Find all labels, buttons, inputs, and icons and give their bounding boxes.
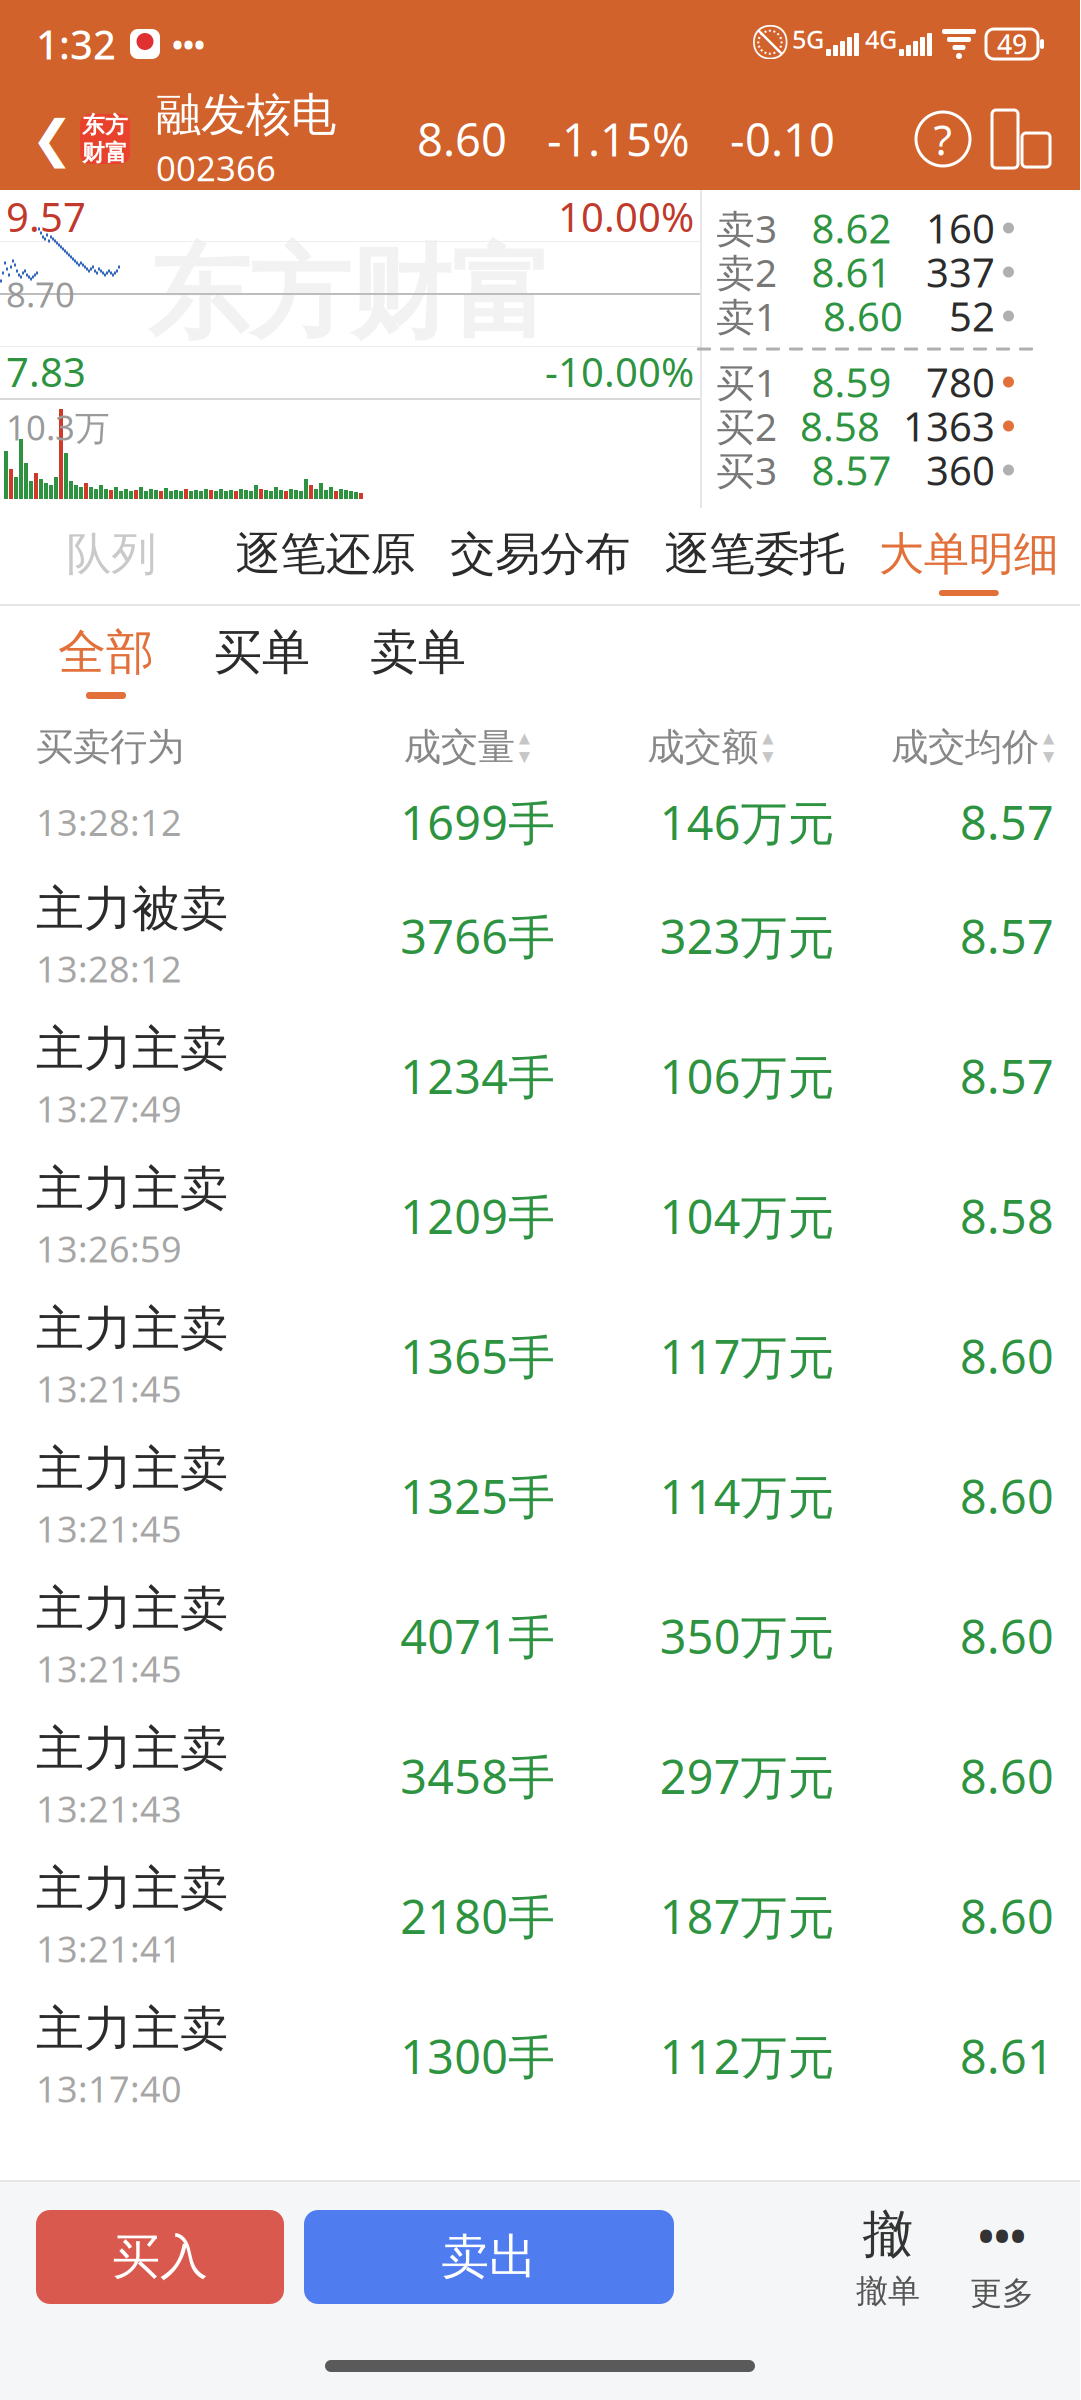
button[interactable]: ••• — [954, 2199, 1050, 2315]
button[interactable]: 卖出 — [304, 2210, 674, 2304]
button[interactable]: 逐笔委托 — [647, 508, 862, 604]
staticText: 350万元 — [660, 1605, 835, 1667]
button[interactable]: 东方财富 — [80, 114, 130, 164]
staticText: 1:32 — [36, 17, 116, 70]
staticText: 买3 — [716, 444, 777, 496]
staticText: 10.3万 — [6, 404, 110, 450]
staticText: 8.57 — [960, 791, 1054, 853]
staticText: 160 — [926, 201, 995, 254]
staticText: ⃠ — [756, 27, 784, 61]
staticText: 主力主卖 — [36, 1160, 228, 1219]
staticText: 337 — [926, 245, 995, 298]
staticText: ? — [933, 111, 952, 167]
staticText: 3458手 — [400, 1745, 555, 1807]
staticText: 13:21:45 — [36, 1645, 182, 1692]
staticText: 1365手 — [400, 1325, 555, 1387]
button[interactable]: 成交均价 — [891, 724, 1054, 770]
button[interactable]: 主力主卖 — [0, 1566, 1080, 1706]
staticText: 买卖行为 — [36, 724, 184, 770]
button[interactable]: 主力被卖 — [0, 866, 1080, 1006]
staticText: 13:28:12 — [36, 798, 182, 846]
button[interactable]: 成交量 — [404, 724, 530, 770]
button[interactable]: 全部 — [28, 608, 184, 714]
button[interactable]: 横屏 — [986, 104, 1056, 174]
button[interactable]: 撤 — [840, 2202, 936, 2312]
staticText: 买1 — [716, 356, 777, 408]
staticText: 8.57 — [960, 905, 1054, 967]
staticText: ▲ — [1043, 729, 1054, 746]
staticText: 1699手 — [400, 791, 555, 853]
button[interactable]: 买入 — [36, 2210, 284, 2304]
staticText: 106万元 — [660, 1045, 835, 1107]
button[interactable]: 返回 — [24, 99, 80, 179]
staticText: 主力主卖 — [36, 1860, 228, 1919]
staticText: 9.57 — [6, 190, 86, 243]
staticText: ••• — [172, 24, 205, 63]
button[interactable]: 卖单 — [340, 608, 496, 714]
staticText: 1234手 — [400, 1045, 555, 1107]
staticText: 8.61 — [960, 2025, 1054, 2087]
staticText: ••• — [978, 2207, 1026, 2264]
staticText: 撤单 — [856, 2271, 920, 2311]
staticText: 8.70 — [6, 271, 75, 317]
staticText: -10.00% — [545, 345, 694, 398]
button[interactable]: 大单明细 — [862, 508, 1076, 604]
staticText: 323万元 — [660, 905, 835, 967]
staticText: 大单明细 — [879, 526, 1059, 582]
staticText: -0.10 — [730, 109, 835, 169]
staticText: ❮ — [31, 110, 73, 168]
staticText: 780 — [926, 355, 995, 408]
staticText: 10.00% — [558, 190, 694, 243]
staticText: 8.60 — [960, 1325, 1054, 1387]
button[interactable]: 交易分布 — [433, 508, 647, 604]
staticText: 8.60 — [960, 1605, 1054, 1667]
staticText: 东方 — [82, 111, 128, 139]
staticText: 112万元 — [660, 2025, 835, 2087]
staticText: 成交量 — [404, 724, 515, 770]
staticText: 8.60 — [823, 289, 903, 342]
staticText: 13:21:41 — [36, 1925, 182, 1972]
button[interactable]: 买单 — [184, 608, 340, 714]
staticText: 297万元 — [660, 1745, 835, 1807]
staticText: 117万元 — [660, 1325, 835, 1387]
staticText: 13:27:49 — [36, 1085, 182, 1132]
staticText: 融发核电 — [156, 87, 336, 143]
staticText: 主力主卖 — [36, 1580, 228, 1639]
staticText: 主力主卖 — [36, 2000, 228, 2059]
staticText: 13:28:12 — [36, 945, 182, 992]
button[interactable]: 队列 — [4, 508, 218, 604]
staticText: -1.15% — [547, 109, 690, 169]
staticText: 8.60 — [417, 109, 507, 169]
staticText: ▼ — [762, 748, 773, 765]
staticText: 卖单 — [370, 623, 466, 682]
staticText: 更多 — [970, 2274, 1034, 2313]
staticText: 1325手 — [400, 1465, 555, 1527]
staticText: 东方财富 — [148, 232, 552, 356]
staticText: 4071手 — [400, 1605, 555, 1667]
staticText: 2180手 — [400, 1885, 555, 1947]
staticText: 主力主卖 — [36, 1020, 228, 1079]
staticText: 8.58 — [800, 399, 880, 452]
staticText: 卖1 — [716, 290, 777, 342]
button[interactable]: 主力主卖 — [0, 1146, 1080, 1286]
button[interactable]: 主力主卖 — [0, 1426, 1080, 1566]
button[interactable]: 主力主卖 — [0, 1986, 1080, 2126]
button[interactable]: 主力主卖 — [0, 1006, 1080, 1146]
staticText: ▼ — [1043, 748, 1054, 765]
staticText: 002366 — [156, 145, 276, 191]
staticText: 114万元 — [660, 1465, 835, 1527]
staticText: 8.60 — [960, 1885, 1054, 1947]
staticText: 7.83 — [6, 345, 86, 398]
staticText: 4G — [865, 22, 897, 56]
button[interactable]: 逐笔还原 — [218, 508, 433, 604]
staticText: 8.62 — [811, 201, 891, 254]
button[interactable]: 主力主卖 — [0, 1286, 1080, 1426]
button[interactable]: 帮助 — [916, 112, 970, 166]
staticText: 买单 — [214, 623, 310, 682]
button[interactable]: 成交额 — [647, 724, 773, 770]
staticText: 队列 — [66, 526, 156, 582]
button[interactable]: 主力主卖 — [0, 1846, 1080, 1986]
staticText: 买入 — [112, 2227, 208, 2286]
staticText: 主力被卖 — [36, 880, 228, 939]
button[interactable]: 主力主卖 — [0, 1706, 1080, 1846]
